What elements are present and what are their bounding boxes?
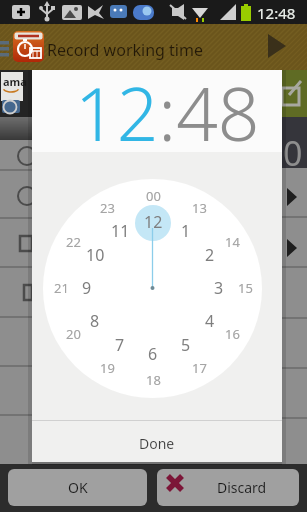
staticText: 12:48: [75, 63, 260, 145]
staticText: 13: [192, 199, 207, 217]
staticText: 20: [66, 325, 81, 343]
staticText: 19: [100, 359, 115, 377]
staticText: ama: [3, 74, 27, 89]
staticText: 00: [146, 187, 161, 205]
staticText: 4: [205, 310, 215, 332]
button[interactable]: OK: [8, 469, 147, 506]
staticText: 14: [225, 233, 240, 251]
staticText: 22: [66, 233, 81, 251]
staticText: 2: [205, 244, 215, 266]
staticText: 21: [54, 279, 69, 297]
staticText: 10: [86, 244, 105, 266]
staticText: 7: [115, 334, 125, 356]
staticText: OK: [68, 478, 88, 497]
staticText: 15: [238, 279, 253, 297]
button[interactable]: Done: [32, 421, 282, 462]
staticText: 23: [100, 199, 115, 217]
staticText: 0: [283, 130, 303, 176]
staticText: 17: [192, 359, 207, 377]
staticText: Discard: [217, 478, 267, 497]
staticText: 16: [225, 325, 240, 343]
staticText: 11: [111, 220, 130, 242]
staticText: 6: [148, 343, 158, 365]
staticText: 18: [146, 371, 161, 389]
staticText: 9: [82, 277, 92, 299]
staticText: Done: [139, 434, 175, 453]
staticText: 1: [181, 220, 191, 242]
button[interactable]: Discard: [157, 469, 299, 506]
staticText: 5: [181, 334, 191, 356]
staticText: 3: [214, 277, 224, 299]
staticText: 12: [144, 211, 163, 233]
staticText: 8: [90, 310, 100, 332]
staticText: 12:48: [257, 3, 296, 23]
button[interactable]: [245, 28, 283, 66]
staticText: Record working time: [47, 39, 203, 61]
